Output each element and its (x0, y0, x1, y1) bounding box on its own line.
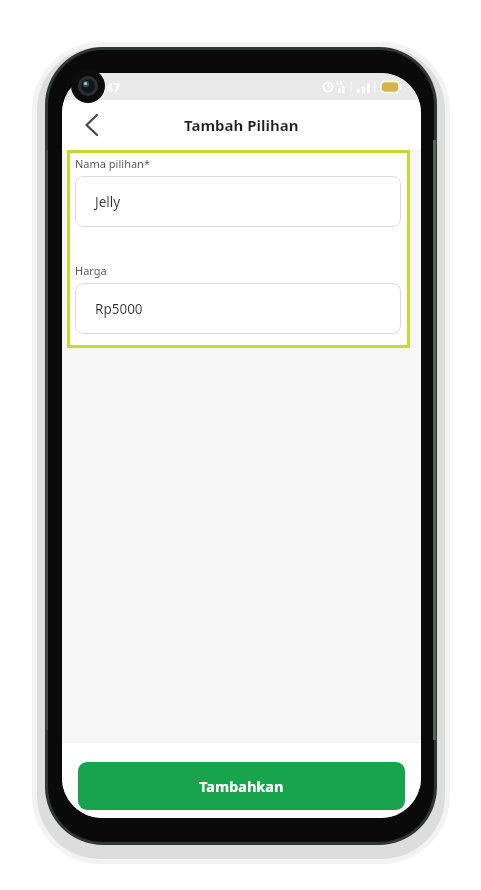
staticText: Jelly (95, 193, 121, 211)
button[interactable]: Jelly (75, 176, 401, 227)
staticText: :47 (103, 79, 120, 95)
button[interactable]: Tambahkan (78, 762, 405, 810)
staticText: Harga (75, 263, 107, 278)
button[interactable]: Rp5000 (75, 283, 401, 334)
staticText: Tambahkan (199, 776, 284, 796)
staticText: Nama pilihan* (75, 156, 150, 171)
button[interactable] (74, 108, 108, 142)
staticText: Tambah Pilihan (184, 115, 299, 135)
staticText: Rp5000 (95, 300, 143, 318)
